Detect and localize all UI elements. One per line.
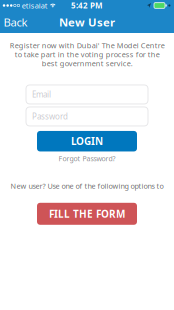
button[interactable]: LOGIN: [37, 131, 137, 151]
staticText: Back: [3, 14, 27, 30]
staticText: FILL THE FORM: [49, 207, 125, 221]
button[interactable]: Email: [26, 85, 148, 104]
button[interactable]: Forgot Password?: [58, 153, 115, 164]
button[interactable]: FILL THE FORM: [37, 203, 137, 225]
staticText: LOGIN: [71, 134, 103, 148]
staticText: 5:42 PM: [71, 0, 103, 11]
staticText: New User: [59, 14, 115, 30]
button[interactable]: Back: [0, 10, 35, 34]
button[interactable]: Password: [26, 107, 148, 126]
staticText: New user? Use one of the following optio…: [10, 181, 163, 191]
staticText: Register now with Dubai' The Model Centr…: [9, 40, 164, 68]
staticText: Email: [32, 89, 51, 100]
staticText: Password: [32, 111, 68, 122]
staticText: etisalat: [22, 0, 48, 11]
staticText: Forgot Password?: [58, 154, 115, 163]
